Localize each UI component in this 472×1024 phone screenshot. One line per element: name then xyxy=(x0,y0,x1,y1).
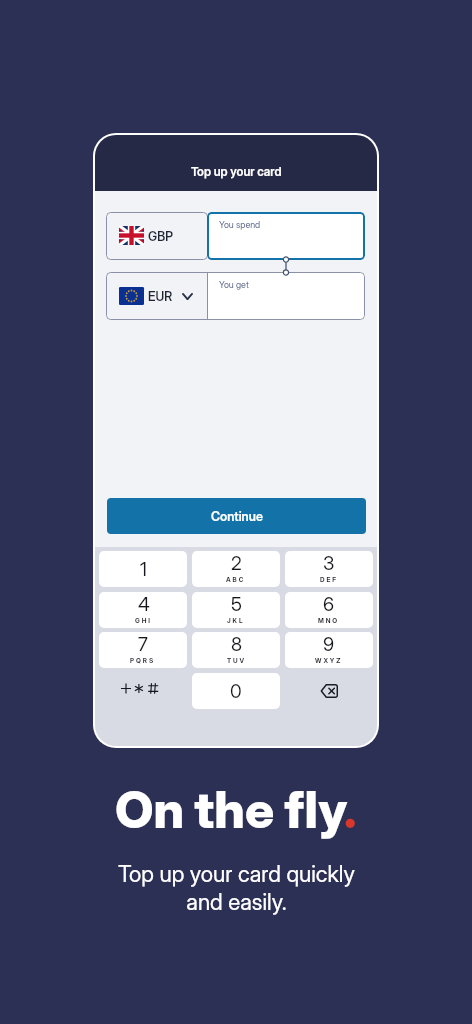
staticText: 9 xyxy=(323,633,335,656)
staticText: Top up your card xyxy=(191,164,282,179)
staticText: GBP xyxy=(148,229,174,244)
button[interactable]: 4 xyxy=(99,592,187,628)
staticText: Continue xyxy=(211,509,263,524)
staticText: MNO xyxy=(318,617,340,625)
staticText: You spend xyxy=(219,219,261,230)
button[interactable]: You get xyxy=(207,272,365,320)
staticText: 5 xyxy=(231,593,242,616)
button[interactable]: 7 xyxy=(99,632,187,668)
staticText: 3 xyxy=(323,552,335,575)
staticText: 6 xyxy=(323,593,335,616)
staticText: GHI xyxy=(135,617,152,625)
staticText: TUV xyxy=(227,657,246,665)
staticText: JKL xyxy=(227,617,245,625)
staticText: 1 xyxy=(140,558,147,581)
button[interactable]: Continue xyxy=(107,498,366,534)
staticText: Top up your card quickly and easily. xyxy=(118,860,355,915)
button[interactable]: You spend xyxy=(207,212,365,260)
button[interactable]: 1 xyxy=(99,551,187,587)
button[interactable]: 0 xyxy=(192,673,280,709)
staticText: 8 xyxy=(231,633,243,656)
staticText: On the fly. xyxy=(115,779,357,841)
button[interactable]: 3 xyxy=(285,551,373,587)
staticText: DEF xyxy=(320,576,338,584)
staticText: EUR xyxy=(148,289,173,304)
button[interactable]: 2 xyxy=(192,551,280,587)
staticText: You get xyxy=(219,279,249,290)
staticText: ABC xyxy=(226,576,246,584)
button[interactable]: 6 xyxy=(285,592,373,628)
button[interactable]: 9 xyxy=(285,632,373,668)
button[interactable]: Backspace xyxy=(285,673,373,709)
staticText: 0 xyxy=(230,680,242,703)
staticText: 7 xyxy=(138,633,148,656)
staticText: 2 xyxy=(231,552,242,575)
button[interactable]: 8 xyxy=(192,632,280,668)
staticText: 4 xyxy=(138,593,150,616)
button[interactable]: GBP xyxy=(106,212,208,260)
button[interactable]: Symbols xyxy=(99,673,187,709)
staticText: PQRS xyxy=(130,657,156,665)
button[interactable]: 5 xyxy=(192,592,280,628)
staticText: WXYZ xyxy=(315,657,343,665)
button[interactable]: EUR xyxy=(106,272,207,320)
